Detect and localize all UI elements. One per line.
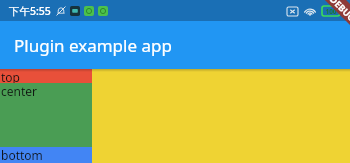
button[interactable]: center	[0, 83, 92, 147]
other: Debug build banner	[302, 0, 350, 48]
button[interactable]: Plugin example app	[0, 21, 350, 69]
staticText: Plugin example app	[14, 34, 172, 57]
button[interactable]: bottom	[0, 147, 92, 163]
staticText: 下午5:55	[9, 4, 51, 18]
staticText: 100	[325, 7, 337, 16]
button[interactable]: top	[0, 69, 92, 83]
staticText: center	[1, 83, 38, 99]
staticText: bottom	[1, 147, 43, 163]
staticText: DEBUG	[328, 0, 350, 23]
staticText: top	[1, 69, 20, 83]
